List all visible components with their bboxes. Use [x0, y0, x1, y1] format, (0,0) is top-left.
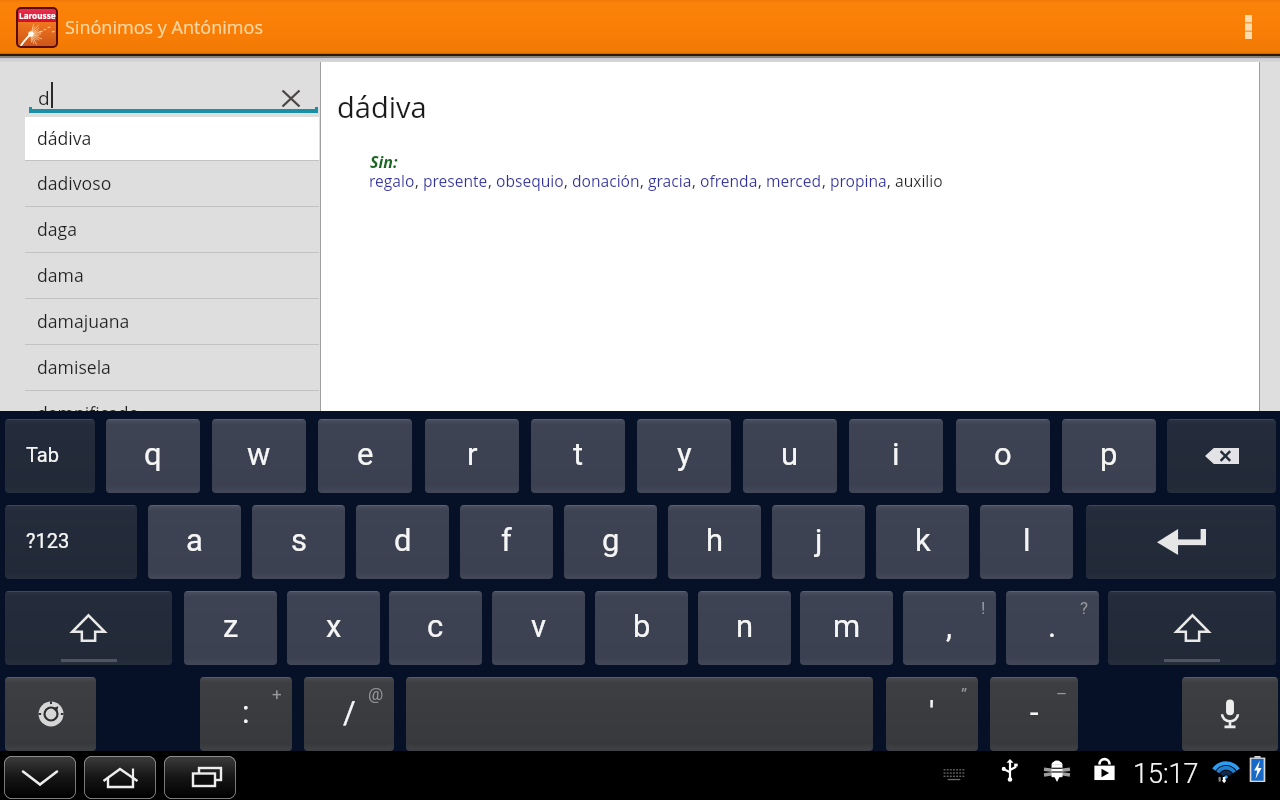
- staticText: dadivoso: [37, 171, 112, 195]
- button[interactable]: donación: [572, 170, 640, 191]
- staticText: /: [343, 694, 356, 730]
- staticText: Larousse: [19, 10, 56, 21]
- button[interactable]: i: [849, 419, 943, 493]
- staticText: auxilio: [895, 170, 943, 191]
- button[interactable]: d: [356, 505, 449, 579]
- staticText: daga: [37, 217, 77, 241]
- button[interactable]: Recent apps: [164, 756, 236, 799]
- staticText: !: [981, 598, 986, 618]
- staticText: l: [1023, 522, 1031, 558]
- button[interactable]: Back: [4, 756, 76, 799]
- staticText: i: [892, 436, 900, 472]
- button[interactable]: propina: [830, 170, 887, 191]
- button[interactable]: g: [564, 505, 657, 579]
- button[interactable]: v: [492, 591, 585, 665]
- button[interactable]: h: [668, 505, 761, 579]
- button[interactable]: q: [106, 419, 200, 493]
- staticText: ,: [822, 170, 830, 191]
- staticText: y: [677, 436, 692, 472]
- button[interactable]: k: [876, 505, 969, 579]
- staticText: 15:17: [1133, 758, 1199, 790]
- staticText: p: [1100, 436, 1118, 472]
- button[interactable]: More options: [1228, 7, 1268, 47]
- button[interactable]: j: [772, 505, 865, 579]
- button[interactable]: Voice input: [1182, 677, 1278, 751]
- button[interactable]: Clear search: [274, 81, 308, 115]
- button[interactable]: n: [698, 591, 791, 665]
- button[interactable]: l: [980, 505, 1073, 579]
- staticText: –: [1056, 684, 1068, 704]
- button[interactable]: /: [304, 677, 394, 751]
- button[interactable]: p: [1062, 419, 1156, 493]
- staticText: c: [427, 608, 444, 644]
- staticText: ?: [1080, 598, 1089, 618]
- button[interactable]: obsequio: [496, 170, 564, 191]
- button[interactable]: f: [460, 505, 553, 579]
- button[interactable]: daga: [25, 206, 319, 252]
- staticText: ?123: [26, 529, 70, 552]
- button[interactable]: ,: [903, 591, 996, 665]
- button[interactable]: ': [886, 677, 978, 751]
- staticText: h: [706, 522, 724, 558]
- staticText: w: [247, 436, 271, 472]
- button[interactable]: Backspace: [1167, 419, 1276, 493]
- button[interactable]: s: [252, 505, 345, 579]
- button[interactable]: :: [200, 677, 292, 751]
- button[interactable]: Home: [84, 756, 156, 799]
- button[interactable]: Keyboard settings: [5, 677, 96, 751]
- button[interactable]: ofrenda: [700, 170, 758, 191]
- button[interactable]: ?123: [5, 505, 137, 579]
- button[interactable]: Shift: [1108, 591, 1276, 665]
- button[interactable]: o: [956, 419, 1050, 493]
- button[interactable]: Tab: [5, 419, 95, 493]
- button[interactable]: Space: [406, 677, 873, 751]
- button[interactable]: gracia: [648, 170, 692, 191]
- button[interactable]: b: [595, 591, 688, 665]
- staticText: +: [272, 684, 282, 704]
- staticText: z: [223, 608, 239, 644]
- button[interactable]: Shift: [5, 591, 172, 665]
- staticText: ,: [564, 170, 572, 191]
- button[interactable]: m: [800, 591, 893, 665]
- staticText: ,: [692, 170, 700, 191]
- staticText: damajuana: [37, 309, 130, 333]
- button[interactable]: c: [389, 591, 482, 665]
- button[interactable]: -: [990, 677, 1078, 751]
- staticText: dádiva: [37, 126, 92, 150]
- button[interactable]: u: [743, 419, 837, 493]
- button[interactable]: e: [318, 419, 412, 493]
- staticText: q: [144, 436, 162, 472]
- button[interactable]: presente: [423, 170, 488, 191]
- staticText: e: [357, 436, 374, 472]
- button[interactable]: x: [287, 591, 380, 665]
- staticText: r: [467, 436, 478, 472]
- staticText: ,: [415, 170, 423, 191]
- button[interactable]: z: [184, 591, 277, 665]
- button[interactable]: damisela: [25, 344, 319, 390]
- staticText: g: [602, 522, 620, 558]
- button[interactable]: damajuana: [25, 298, 319, 344]
- button[interactable]: w: [212, 419, 306, 493]
- button[interactable]: .: [1006, 591, 1099, 665]
- staticText: ,: [887, 170, 895, 191]
- button[interactable]: a: [148, 505, 241, 579]
- staticText: m: [833, 608, 861, 644]
- button[interactable]: y: [637, 419, 731, 493]
- button[interactable]: Enter: [1086, 505, 1276, 579]
- button[interactable]: dama: [25, 252, 319, 298]
- button[interactable]: t: [531, 419, 625, 493]
- staticText: f: [501, 522, 512, 558]
- button[interactable]: regalo: [369, 170, 415, 191]
- staticText: j: [815, 522, 823, 558]
- staticText: ': [929, 694, 935, 730]
- button[interactable]: Larousse: [16, 7, 58, 48]
- staticText: t: [573, 436, 584, 472]
- button[interactable]: r: [425, 419, 519, 493]
- staticText: damisela: [37, 355, 111, 379]
- staticText: u: [781, 436, 799, 472]
- button[interactable]: damnificado: [25, 390, 319, 436]
- button[interactable]: dádiva: [25, 117, 319, 160]
- button[interactable]: dadivoso: [25, 160, 319, 206]
- button[interactable]: merced: [766, 170, 822, 191]
- staticText: d: [394, 522, 412, 558]
